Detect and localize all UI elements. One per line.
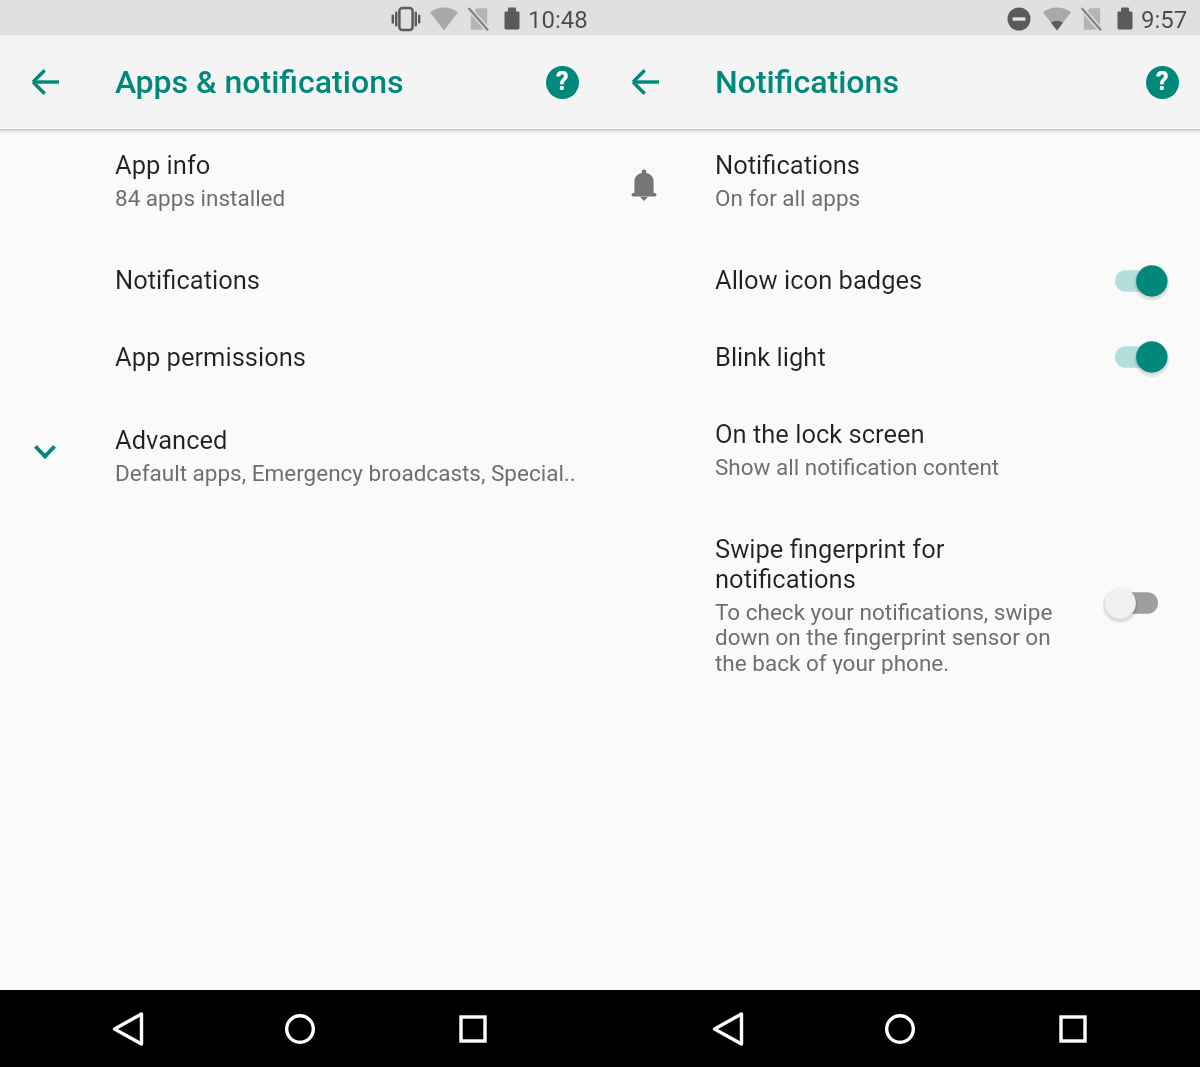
button[interactable]: Navigate up (622, 58, 670, 106)
button[interactable]: Navigate up (22, 58, 70, 106)
staticText: ? (1156, 67, 1169, 96)
staticText: Allow icon badges (715, 265, 923, 295)
button[interactable]: Advanced (0, 411, 600, 491)
staticText: Notifications (115, 265, 260, 295)
button[interactable]: Home (250, 999, 350, 1059)
button[interactable]: Help (1138, 58, 1186, 106)
button[interactable]: Home (850, 999, 950, 1059)
button[interactable]: Switch on (1099, 257, 1183, 305)
staticText: Show all notification content (715, 454, 1000, 480)
staticText: On for all apps (715, 185, 861, 211)
staticText: ? (556, 67, 569, 96)
staticText: On the lock screen (715, 419, 925, 449)
button[interactable]: Swipe fingerprint for notifications (600, 520, 1200, 660)
staticText: Default apps, Emergency broadcasts, Spec… (115, 460, 576, 486)
staticText: 10:48 (528, 6, 588, 34)
button[interactable]: On the lock screen (600, 405, 1200, 485)
button[interactable]: Switch off (1090, 579, 1174, 627)
button[interactable]: Help (538, 58, 586, 106)
button[interactable]: Recent apps (423, 999, 523, 1059)
button[interactable]: Blink light (600, 328, 1200, 384)
staticText: Apps & notifications (115, 63, 404, 101)
staticText: Advanced (115, 425, 228, 455)
staticText: Blink light (715, 342, 826, 372)
staticText: To check your notifications, swipe down … (715, 599, 1060, 674)
button[interactable]: App info (0, 136, 600, 216)
button[interactable]: Switch on (1099, 333, 1183, 381)
button[interactable]: Back (78, 999, 178, 1059)
button[interactable]: Back (678, 999, 778, 1059)
staticText: Swipe fingerprint for notifications (715, 534, 1060, 594)
staticText: App permissions (115, 342, 306, 372)
staticText: 84 apps installed (115, 185, 286, 211)
staticText: Notifications (715, 150, 860, 180)
button[interactable]: Notifications (0, 251, 600, 307)
button[interactable]: Recent apps (1023, 999, 1123, 1059)
button[interactable]: Notifications (600, 136, 1200, 216)
staticText: Notifications (715, 63, 899, 101)
staticText: 9:57 (1141, 6, 1188, 34)
button[interactable]: App permissions (0, 328, 600, 384)
staticText: App info (115, 150, 211, 180)
button[interactable]: Allow icon badges (600, 251, 1200, 307)
